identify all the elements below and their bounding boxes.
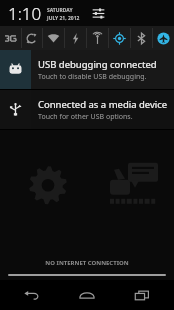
button[interactable]: Battery bbox=[64, 26, 86, 50]
staticText: 1:10 bbox=[8, 2, 42, 25]
button[interactable]: Signal bbox=[86, 26, 108, 50]
button[interactable]: Location bbox=[108, 26, 130, 50]
staticText: Touch to disable USB debugging. bbox=[38, 72, 147, 82]
button[interactable]: Wi-Fi bbox=[42, 26, 64, 50]
staticText: SATURDAY bbox=[47, 7, 73, 14]
button[interactable]: Back bbox=[17, 280, 47, 310]
button[interactable]: Settings bbox=[88, 3, 108, 23]
button[interactable]: Connected as a media device bbox=[0, 90, 174, 129]
button[interactable]: Bluetooth bbox=[130, 26, 152, 50]
button[interactable]: Close shade handle bbox=[8, 274, 166, 276]
staticText: Touch for other USB options. bbox=[38, 112, 133, 122]
button[interactable]: Recent apps bbox=[127, 280, 157, 310]
button[interactable]: Mobile data bbox=[0, 26, 21, 50]
button[interactable]: Auto rotate bbox=[21, 26, 42, 50]
staticText: Connected as a media device bbox=[38, 98, 168, 111]
staticText: NO INTERNET CONNECTION bbox=[45, 259, 129, 267]
button[interactable]: Home bbox=[72, 280, 102, 310]
staticText: USB debugging connected bbox=[38, 58, 157, 71]
button[interactable]: Airplane mode bbox=[152, 26, 174, 50]
button[interactable]: USB debugging connected bbox=[0, 50, 174, 89]
staticText: JULY 21, 2012 bbox=[47, 15, 80, 22]
